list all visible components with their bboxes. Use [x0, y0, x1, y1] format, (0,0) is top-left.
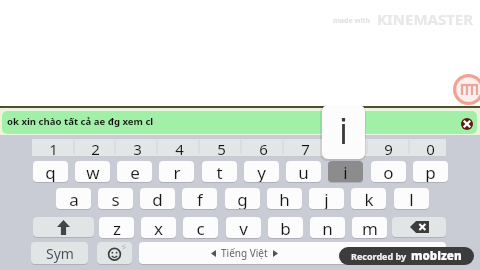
button[interactable]: 7 — [284, 139, 326, 157]
button[interactable]: r — [159, 161, 194, 182]
button[interactable]: b — [268, 217, 303, 238]
staticText: 2 — [91, 139, 100, 157]
button[interactable]: x — [141, 217, 176, 238]
staticText: g — [237, 188, 248, 209]
staticText: p — [425, 161, 436, 182]
staticText: j — [324, 188, 329, 209]
staticText: Sym — [46, 244, 74, 263]
button[interactable]: m — [352, 217, 387, 238]
staticText: ok xin chào tất cả ae đg xem cl — [7, 115, 154, 128]
staticText: 1 — [49, 139, 58, 157]
staticText: y — [257, 161, 266, 182]
button[interactable]: g — [225, 188, 260, 209]
staticText: 4 — [175, 139, 184, 157]
button[interactable]: k — [351, 188, 386, 209]
staticText: Recorded by — [351, 250, 407, 262]
button[interactable]: 9 — [367, 139, 409, 157]
staticText: t — [216, 161, 223, 182]
staticText: k — [364, 188, 374, 209]
staticText: x — [154, 217, 163, 238]
button[interactable]: i — [328, 161, 363, 182]
button[interactable]: n — [310, 217, 345, 238]
staticText: 7 — [301, 139, 310, 157]
button[interactable]: Space — [139, 242, 446, 264]
staticText: m — [362, 217, 378, 238]
button[interactable]: f — [182, 188, 217, 209]
button[interactable]: h — [267, 188, 302, 209]
staticText: e — [130, 161, 140, 182]
staticText: 5 — [217, 139, 226, 157]
button[interactable]: 2 — [74, 139, 116, 157]
button[interactable]: y — [244, 161, 279, 182]
staticText: w — [86, 161, 100, 182]
staticText: q — [45, 161, 56, 182]
button[interactable]: c — [183, 217, 218, 238]
button[interactable]: u — [286, 161, 321, 182]
button[interactable]: v — [226, 217, 261, 238]
button[interactable]: 5 — [200, 139, 242, 157]
button[interactable]: Sym — [31, 242, 88, 264]
staticText: 8 — [343, 139, 352, 157]
button[interactable]: w — [75, 161, 110, 182]
button[interactable]: e — [117, 161, 152, 182]
button[interactable]: 0 — [409, 139, 451, 157]
staticText: 9 — [384, 139, 393, 157]
button[interactable]: 1 — [32, 139, 74, 157]
staticText: b — [280, 217, 291, 238]
button[interactable]: 3 — [116, 139, 158, 157]
staticText: u — [298, 161, 309, 182]
staticText: o — [383, 161, 394, 182]
staticText: 6 — [259, 139, 268, 157]
staticText: mobizen — [411, 248, 462, 264]
button[interactable]: s — [98, 188, 133, 209]
staticText: 3 — [133, 139, 142, 157]
staticText: z — [113, 217, 121, 238]
staticText: f — [197, 188, 203, 209]
staticText: h — [279, 188, 290, 209]
staticText: l — [409, 188, 414, 209]
staticText: d — [152, 188, 163, 209]
button[interactable]: l — [394, 188, 429, 209]
button[interactable]: z — [99, 217, 134, 238]
button[interactable]: d — [140, 188, 175, 209]
staticText: KINEMASTER — [377, 9, 474, 29]
button[interactable]: Clear text — [461, 118, 473, 130]
button[interactable]: o — [371, 161, 406, 182]
staticText: s — [111, 188, 120, 209]
staticText: made with — [333, 16, 371, 26]
button[interactable]: a — [56, 188, 91, 209]
button[interactable]: p — [413, 161, 448, 182]
staticText: c — [196, 217, 205, 238]
button[interactable]: t — [202, 161, 237, 182]
button[interactable]: Emoji — [97, 242, 132, 264]
button[interactable]: j — [309, 188, 344, 209]
staticText: 0 — [426, 139, 435, 157]
button[interactable]: 8 — [326, 139, 368, 157]
staticText: n — [322, 217, 333, 238]
staticText: Tiếng Việt — [221, 246, 268, 260]
button[interactable]: ok xin chào tất cả ae đg xem cl — [2, 111, 477, 134]
staticText: v — [239, 217, 248, 238]
button[interactable]: 4 — [158, 139, 200, 157]
button[interactable]: q — [33, 161, 68, 182]
button[interactable]: Shift — [33, 217, 94, 237]
staticText: a — [69, 188, 79, 209]
button[interactable]: Backspace — [392, 217, 446, 237]
other: Key preview i — [322, 105, 365, 159]
button[interactable]: 6 — [242, 139, 284, 157]
staticText: i — [343, 161, 348, 182]
staticText: r — [173, 161, 181, 182]
